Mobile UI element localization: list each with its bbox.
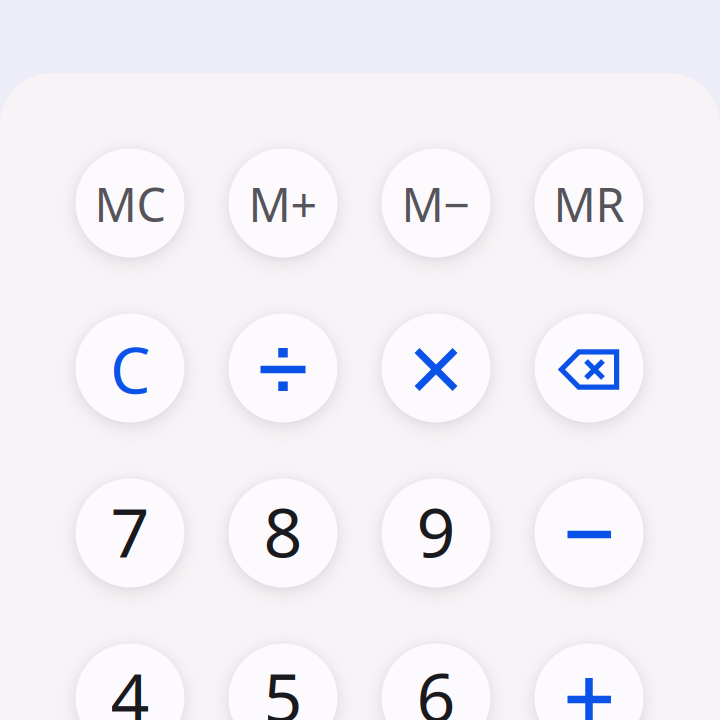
staticText: M+ bbox=[248, 173, 317, 235]
staticText: C bbox=[110, 326, 150, 411]
button[interactable]: Multiply bbox=[381, 313, 490, 422]
staticText: 8 bbox=[263, 486, 302, 576]
button[interactable]: M+ bbox=[228, 148, 337, 257]
button[interactable]: Plus bbox=[534, 643, 643, 720]
staticText: 4 bbox=[110, 651, 149, 720]
staticText: 9 bbox=[416, 486, 455, 576]
button[interactable]: 8 bbox=[228, 478, 337, 587]
button[interactable]: 9 bbox=[381, 478, 490, 587]
button[interactable]: MC bbox=[75, 148, 184, 257]
staticText: M− bbox=[401, 173, 470, 235]
button[interactable]: 4 bbox=[75, 643, 184, 720]
button[interactable]: C bbox=[75, 313, 184, 422]
staticText: 5 bbox=[263, 651, 302, 720]
staticText: 7 bbox=[110, 486, 149, 576]
staticText: MC bbox=[94, 173, 165, 235]
staticText: 6 bbox=[416, 651, 455, 720]
staticText: MR bbox=[553, 173, 624, 235]
button[interactable]: Minus bbox=[534, 478, 643, 587]
button[interactable]: MR bbox=[534, 148, 643, 257]
button[interactable]: 6 bbox=[381, 643, 490, 720]
button[interactable]: M− bbox=[381, 148, 490, 257]
button[interactable]: Delete bbox=[534, 313, 643, 422]
button[interactable]: 7 bbox=[75, 478, 184, 587]
button[interactable]: Divide bbox=[228, 313, 337, 422]
button[interactable]: 5 bbox=[228, 643, 337, 720]
